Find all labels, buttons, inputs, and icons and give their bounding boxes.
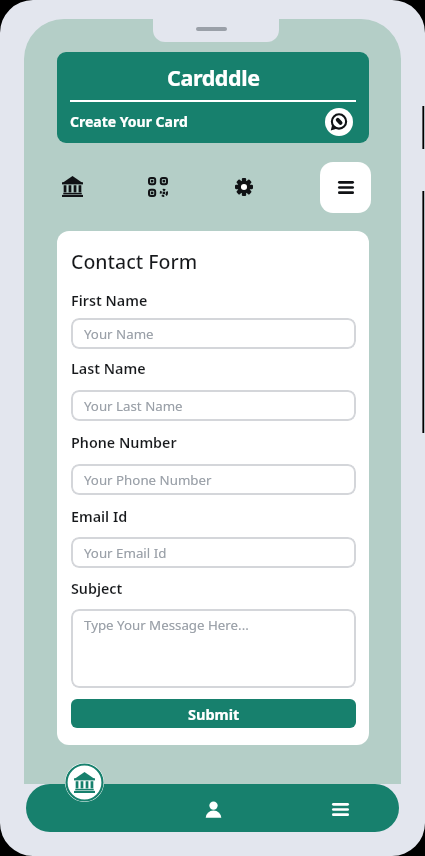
staticText: Phone Number (71, 433, 177, 452)
staticText: Your Last Name (84, 397, 183, 415)
staticText: Last Name (71, 359, 146, 378)
button[interactable] (320, 162, 371, 213)
button[interactable] (65, 763, 104, 802)
staticText: Type Your Message Here... (84, 616, 249, 634)
button[interactable]: Your Email Id (71, 537, 356, 568)
button[interactable]: Cardddle (57, 52, 369, 143)
staticText: Email Id (71, 507, 128, 526)
staticText: Contact Form (71, 248, 198, 272)
button[interactable]: Type Your Message Here... (71, 609, 356, 688)
staticText: Subject (71, 579, 123, 598)
staticText: Your Email Id (84, 544, 167, 562)
staticText: Create Your Card (70, 112, 188, 131)
staticText: Your Name (84, 325, 154, 343)
button[interactable] (325, 108, 353, 136)
button[interactable]: Your Last Name (71, 390, 356, 421)
button[interactable]: Your Name (71, 318, 356, 349)
button[interactable]: Submit (71, 699, 356, 728)
button[interactable]: Your Phone Number (71, 464, 356, 495)
button[interactable] (316, 792, 364, 826)
button[interactable] (62, 176, 83, 197)
button[interactable] (148, 177, 168, 197)
button[interactable] (190, 792, 236, 826)
staticText: Submit (188, 704, 240, 724)
staticText: Cardddle (167, 63, 260, 92)
staticText: First Name (71, 291, 148, 310)
button[interactable] (235, 178, 253, 196)
staticText: Your Phone Number (84, 471, 212, 489)
